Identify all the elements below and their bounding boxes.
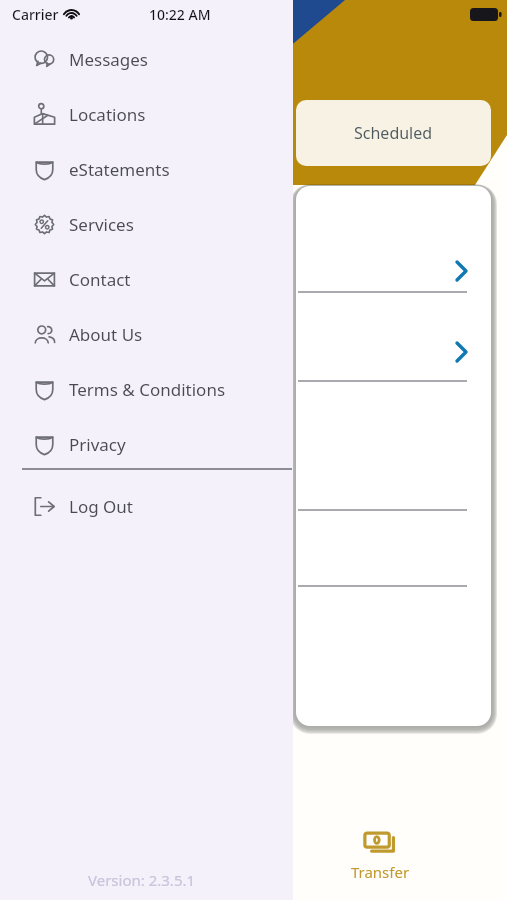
staticText: Contact <box>69 268 131 291</box>
button[interactable]: Transfer <box>330 828 430 896</box>
button[interactable]: Log Out <box>0 479 293 534</box>
staticText: 10:22 AM <box>149 5 211 24</box>
staticText: Transfer <box>330 862 430 882</box>
staticText: Services <box>69 213 134 236</box>
staticText: Version: 2.3.5.1 <box>88 870 196 890</box>
button[interactable]: Locations <box>0 87 293 142</box>
staticText: Scheduled <box>354 122 433 144</box>
staticText: Messages <box>69 48 149 71</box>
button[interactable]: Terms & Conditions <box>0 362 293 417</box>
staticText: Log Out <box>69 495 133 518</box>
button[interactable]: About Us <box>0 307 293 362</box>
button[interactable]: eStatements <box>0 142 293 197</box>
staticText: Privacy <box>69 433 126 456</box>
button[interactable]: Privacy <box>0 417 293 472</box>
button[interactable]: Scheduled <box>296 100 491 166</box>
staticText: Carrier <box>12 5 59 24</box>
staticText: Locations <box>69 103 146 126</box>
button[interactable]: Contact <box>0 252 293 307</box>
staticText: About Us <box>69 323 143 346</box>
button[interactable]: Messages <box>0 32 293 87</box>
staticText: Terms & Conditions <box>69 378 226 401</box>
staticText: eStatements <box>69 158 170 181</box>
button[interactable]: Services <box>0 197 293 252</box>
